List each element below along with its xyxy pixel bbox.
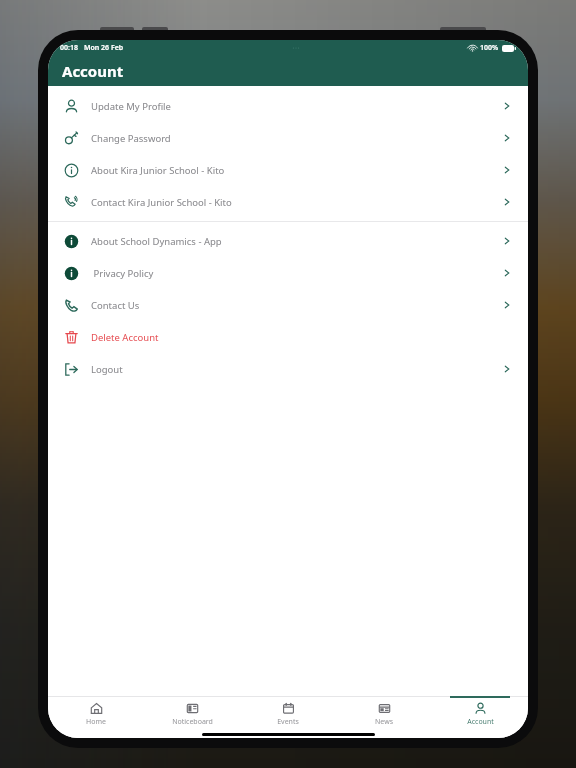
staticText: Contact Kira Junior School - Kito [91,196,232,209]
button[interactable]: Account [432,696,528,738]
staticText: Account [467,717,494,727]
staticText: Update My Profile [91,100,171,113]
staticText: Mon 26 Feb [84,43,124,53]
button[interactable]: Contact Us [48,289,528,321]
staticText: 100% [480,43,499,53]
staticText: Privacy Policy [91,267,154,280]
button[interactable]: Update My Profile [48,90,528,122]
staticText: Contact Us [91,299,140,312]
button[interactable]: Change Password [48,122,528,154]
staticText: Account [62,61,124,81]
staticText: Noticeboard [172,717,213,727]
button[interactable]: About Kira Junior School - Kito [48,154,528,186]
staticText: Change Password [91,132,171,145]
staticText: About Kira Junior School - Kito [91,164,225,177]
staticText: Delete Account [91,331,159,344]
button[interactable]: Contact Kira Junior School - Kito [48,186,528,218]
button[interactable]: Home [48,696,144,738]
button[interactable]: About School Dynamics - App [48,225,528,257]
staticText: Home [86,717,106,727]
button[interactable]: Noticeboard [144,696,240,738]
button[interactable]: Delete Account [48,321,528,353]
button[interactable]: News [336,696,432,738]
button[interactable]: Logout [48,353,528,385]
staticText: Events [277,717,299,727]
staticText: About School Dynamics - App [91,235,222,248]
button[interactable]: Privacy Policy [48,257,528,289]
staticText: Logout [91,363,123,376]
staticText: News [375,717,393,727]
button[interactable]: Events [240,696,336,738]
staticText: 00:18 [60,43,78,53]
